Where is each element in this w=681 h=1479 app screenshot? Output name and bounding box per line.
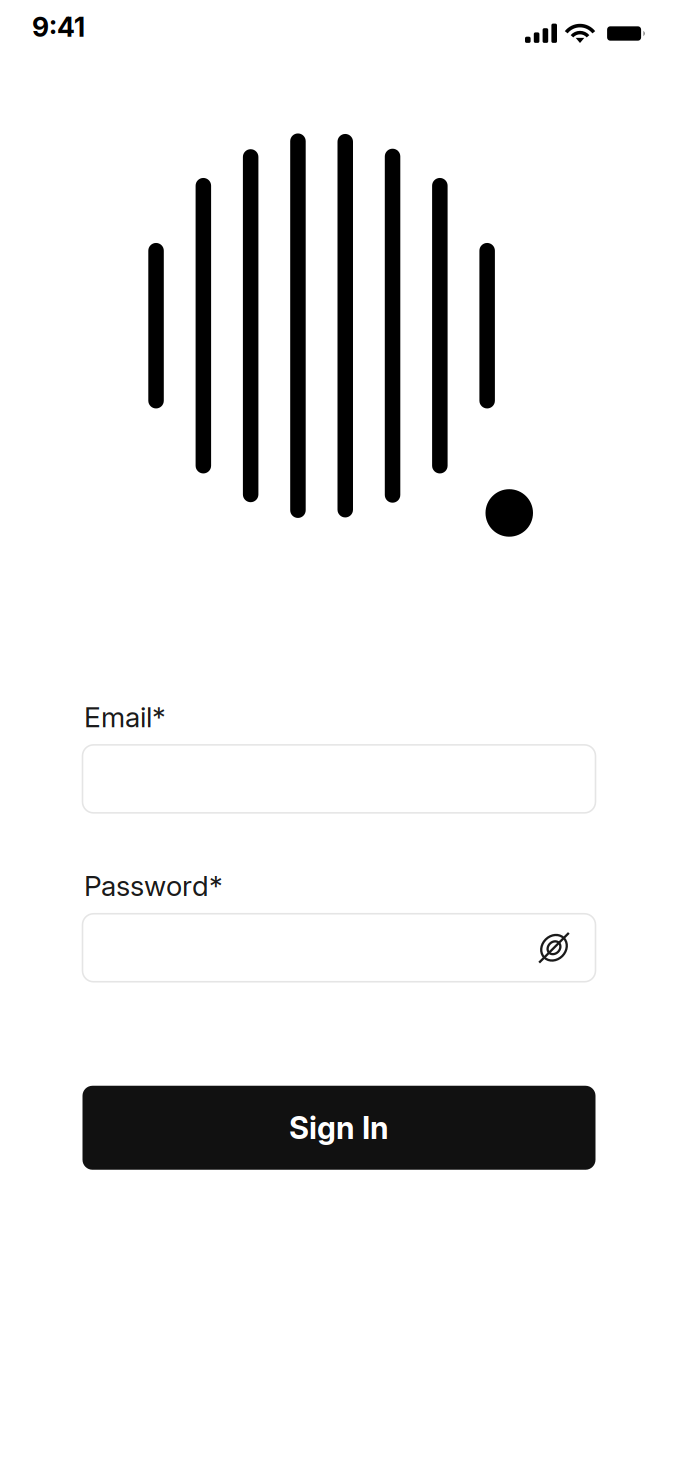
button[interactable]: Show password	[537, 931, 595, 965]
button[interactable]: Password	[82, 914, 595, 982]
button[interactable]: Sign In	[82, 1086, 595, 1170]
staticText: 9:41	[32, 11, 85, 43]
button[interactable]: Email	[82, 745, 595, 813]
staticText: Sign In	[289, 1109, 389, 1146]
staticText: Email*	[84, 700, 166, 734]
staticText: Password*	[84, 869, 223, 903]
